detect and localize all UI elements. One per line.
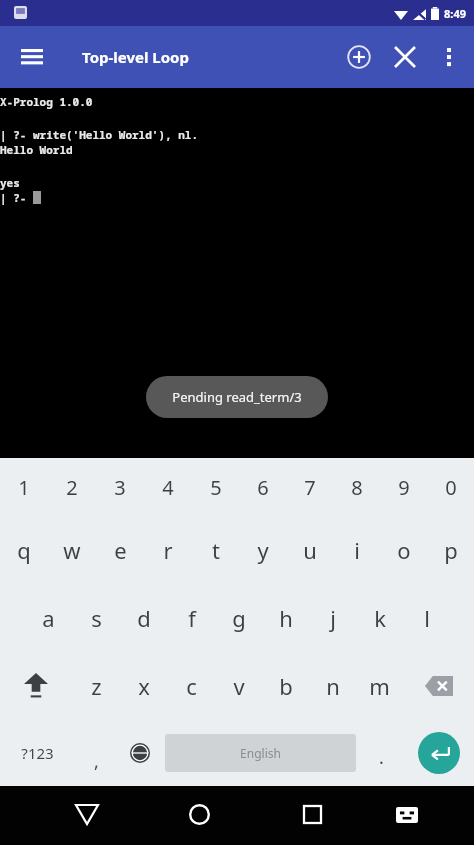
button[interactable]: m	[356, 652, 403, 720]
button[interactable]: u	[286, 516, 333, 584]
staticText: 1	[18, 474, 30, 501]
staticText: X-Prolog 1.0.0	[0, 94, 93, 109]
staticText: w	[63, 535, 81, 565]
button[interactable]: ,	[75, 720, 118, 786]
button[interactable]: 3	[96, 458, 144, 516]
button[interactable]: j	[309, 584, 356, 652]
staticText: 9	[398, 474, 410, 501]
staticText: l	[424, 603, 430, 633]
button[interactable]: t	[192, 516, 239, 584]
button[interactable]: r	[144, 516, 192, 584]
staticText: y	[257, 535, 269, 565]
staticText: | ?-	[0, 190, 33, 205]
button[interactable]: Enter	[403, 720, 474, 786]
staticText: k	[374, 603, 386, 633]
staticText: | ?- write('Hello World'), nl.	[0, 127, 198, 142]
staticText: g	[232, 603, 246, 633]
staticText: i	[354, 535, 360, 565]
staticText: yes	[0, 175, 20, 190]
staticText: 3	[114, 474, 126, 501]
button[interactable]: k	[356, 584, 403, 652]
staticText: ,	[94, 749, 99, 774]
button[interactable]: 2	[48, 458, 96, 516]
button[interactable]: b	[262, 652, 309, 720]
button[interactable]: Home	[143, 786, 256, 843]
button[interactable]: Recent apps	[256, 786, 369, 843]
button[interactable]: Add	[336, 34, 382, 80]
button[interactable]: a	[24, 584, 72, 652]
button[interactable]: 7	[286, 458, 333, 516]
button[interactable]: e	[96, 516, 144, 584]
staticText: English	[240, 745, 281, 761]
button[interactable]: w	[48, 516, 96, 584]
button[interactable]: n	[309, 652, 356, 720]
staticText: z	[91, 671, 102, 701]
button[interactable]: 9	[380, 458, 427, 516]
staticText: c	[186, 671, 197, 701]
button[interactable]: q	[0, 516, 48, 584]
button[interactable]: o	[380, 516, 427, 584]
button[interactable]: 6	[239, 458, 286, 516]
button[interactable]: Back	[30, 786, 143, 843]
staticText: a	[42, 603, 55, 633]
button[interactable]: d	[120, 584, 168, 652]
staticText: 5	[210, 474, 222, 501]
button[interactable]: z	[72, 652, 120, 720]
button[interactable]: g	[215, 584, 262, 652]
button[interactable]: Close	[382, 34, 428, 80]
staticText: e	[114, 535, 127, 565]
staticText: o	[397, 535, 411, 565]
staticText: s	[91, 603, 102, 633]
staticText: 0	[445, 474, 457, 501]
button[interactable]: f	[168, 584, 215, 652]
staticText: 8	[351, 474, 363, 501]
staticText: 2	[66, 474, 78, 501]
staticText: q	[17, 535, 31, 565]
staticText: u	[303, 535, 317, 565]
staticText: h	[279, 603, 293, 633]
staticText: 6	[257, 474, 269, 501]
button[interactable]: Menu	[10, 35, 54, 79]
button[interactable]: ?123	[0, 720, 75, 786]
button[interactable]: i	[333, 516, 380, 584]
button[interactable]: 4	[144, 458, 192, 516]
staticText: ?123	[21, 743, 54, 763]
button[interactable]: English	[165, 734, 356, 772]
staticText: j	[330, 603, 336, 633]
staticText: v	[233, 671, 245, 701]
button[interactable]: Backspace	[403, 652, 474, 720]
button[interactable]: c	[168, 652, 215, 720]
button[interactable]: 0	[427, 458, 474, 516]
button[interactable]: s	[72, 584, 120, 652]
staticText: x	[138, 671, 150, 701]
staticText: d	[137, 603, 151, 633]
staticText: t	[212, 535, 220, 565]
staticText: Pending read_term/3	[172, 388, 302, 406]
button[interactable]: Change language	[118, 720, 161, 786]
button[interactable]: Shift	[0, 652, 72, 720]
button[interactable]: 8	[333, 458, 380, 516]
button[interactable]: h	[262, 584, 309, 652]
staticText: b	[279, 671, 293, 701]
staticText: p	[444, 535, 458, 565]
staticText: m	[369, 671, 390, 701]
button[interactable]: p	[427, 516, 474, 584]
button[interactable]: 1	[0, 458, 48, 516]
button[interactable]: x	[120, 652, 168, 720]
button[interactable]: Hide keyboard	[369, 786, 444, 843]
button[interactable]: y	[239, 516, 286, 584]
button[interactable]: l	[403, 584, 450, 652]
staticText: 8:49	[444, 6, 466, 21]
button[interactable]: v	[215, 652, 262, 720]
staticText: 7	[304, 474, 316, 501]
staticText: Hello World	[0, 142, 73, 157]
staticText: Top-level Loop	[82, 47, 189, 67]
button[interactable]: 5	[192, 458, 239, 516]
staticText: n	[326, 671, 340, 701]
button[interactable]: More options	[428, 36, 470, 78]
staticText: 4	[162, 474, 174, 501]
staticText: r	[163, 535, 173, 565]
button[interactable]: .	[360, 720, 403, 786]
staticText: f	[188, 603, 196, 633]
staticText: .	[379, 745, 384, 770]
